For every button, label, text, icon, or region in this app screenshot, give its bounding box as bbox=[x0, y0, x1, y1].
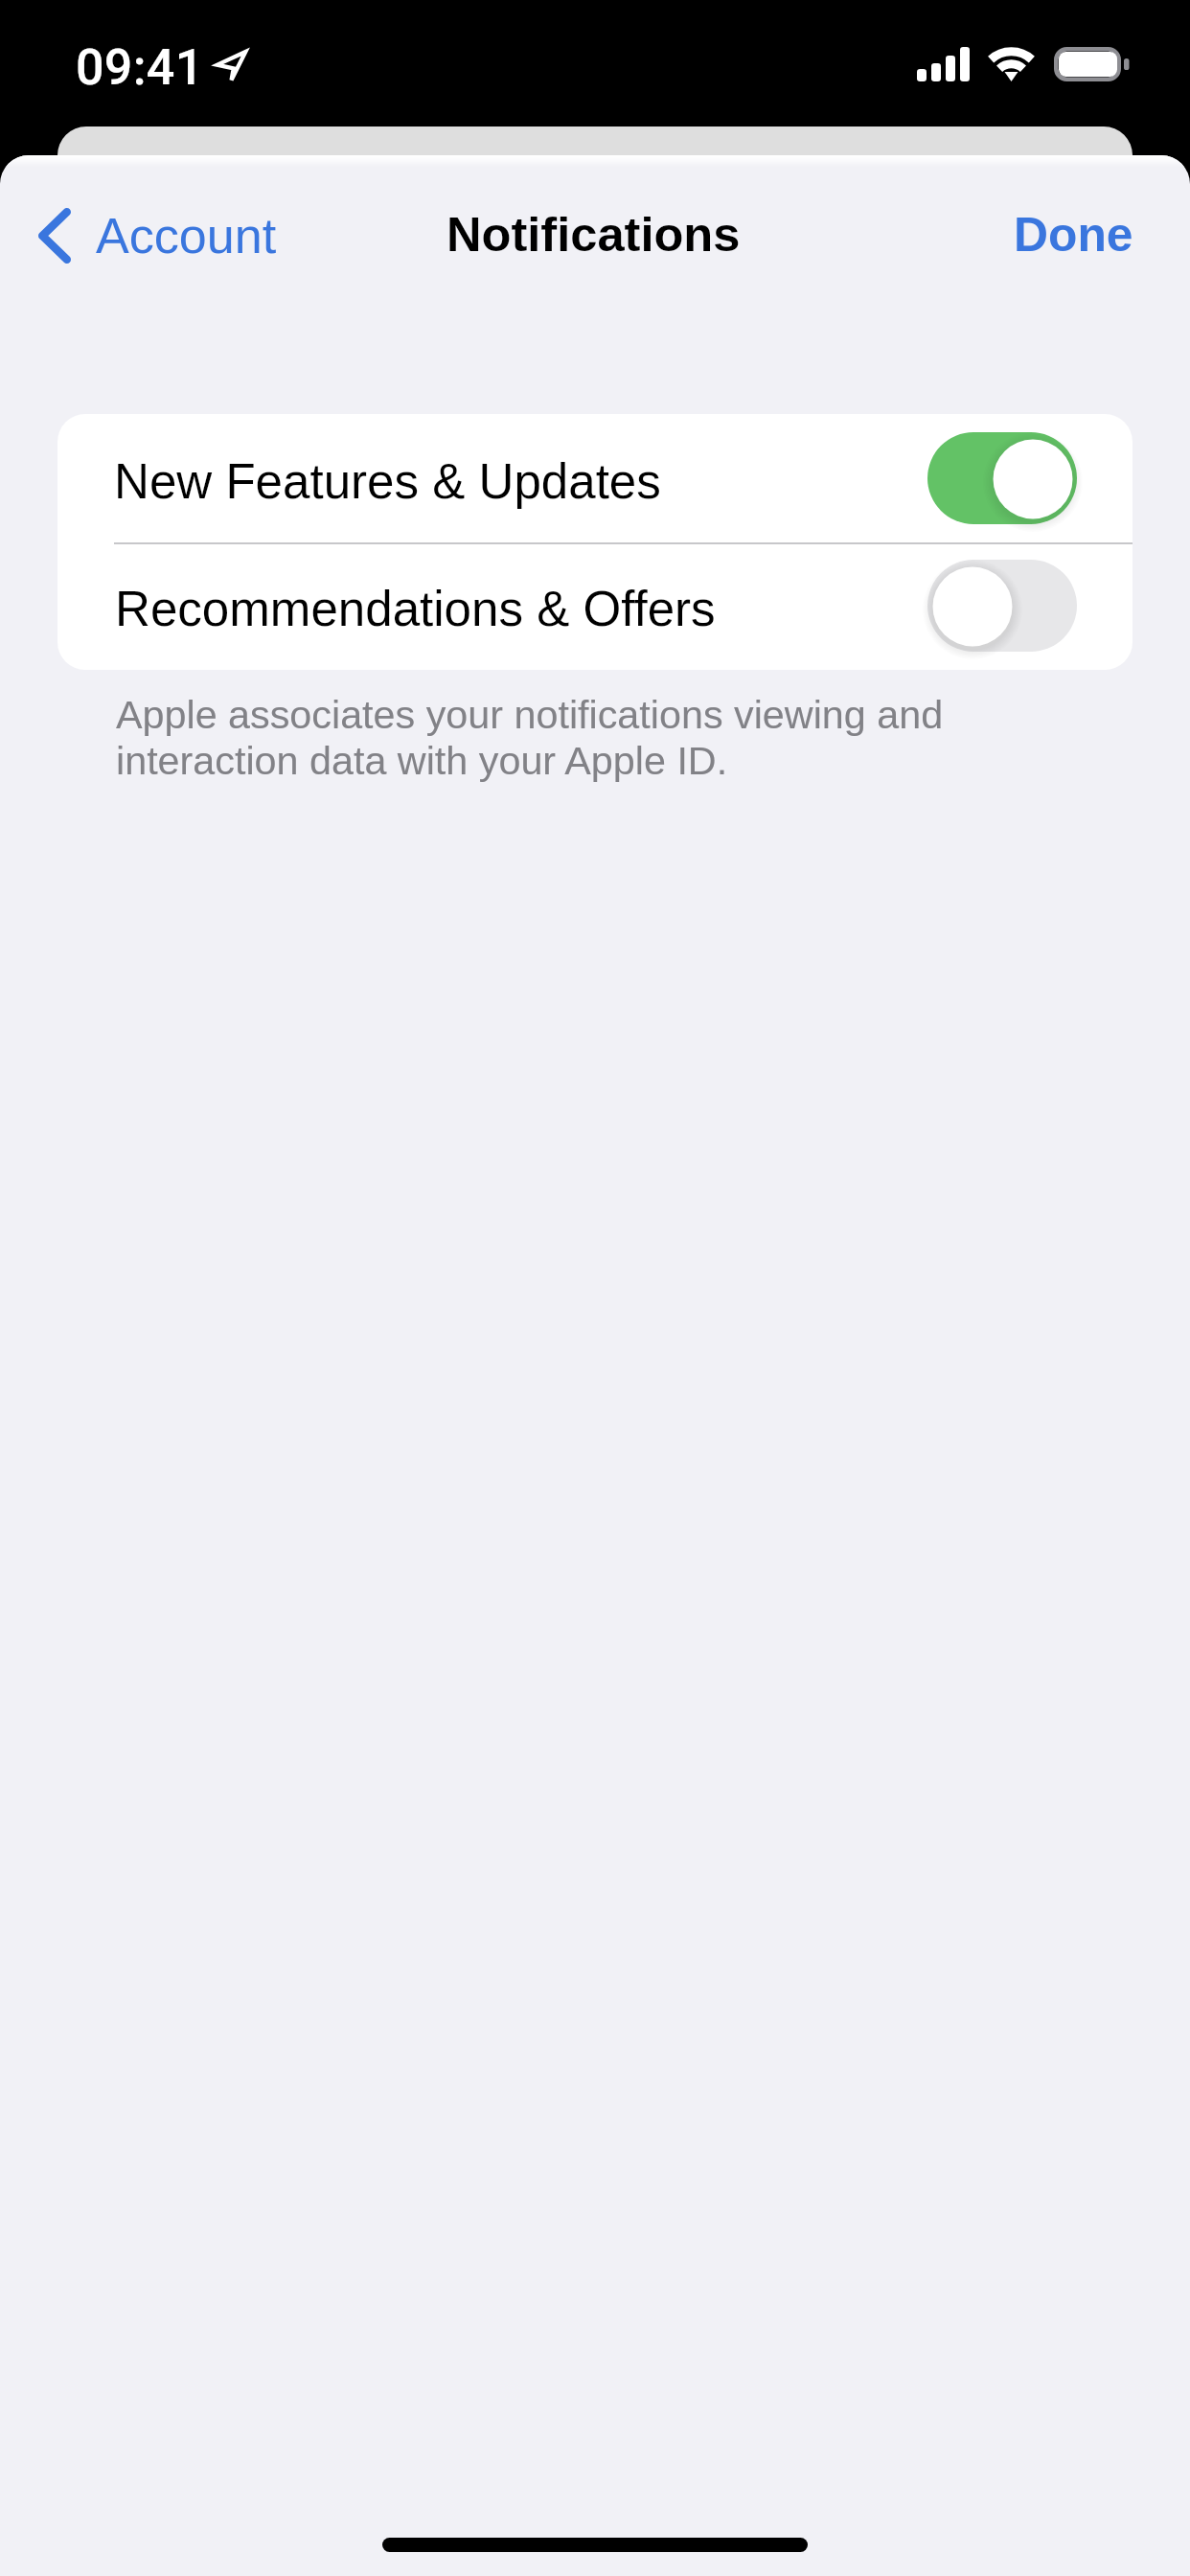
button[interactable]: Off bbox=[927, 560, 1077, 652]
staticText: Recommendations & Offers bbox=[115, 582, 716, 636]
button[interactable]: Account bbox=[17, 182, 305, 289]
staticText: Apple associates your notifications view… bbox=[116, 693, 990, 783]
button[interactable]: Recommendations & Offers bbox=[57, 541, 1133, 669]
other: Location in use bbox=[214, 49, 249, 84]
staticText: New Features & Updates bbox=[114, 454, 661, 509]
other: Cellular signal bbox=[917, 47, 970, 81]
button[interactable]: New Features & Updates bbox=[57, 414, 1133, 541]
button[interactable]: Done bbox=[970, 182, 1175, 289]
staticText: Account bbox=[96, 208, 277, 264]
other: Wi-Fi bbox=[989, 47, 1034, 81]
staticText: Notifications bbox=[446, 207, 741, 262]
staticText: Done bbox=[1014, 208, 1133, 262]
staticText: 09:41 bbox=[76, 38, 204, 97]
button[interactable]: On bbox=[927, 432, 1077, 524]
other: Battery full bbox=[1054, 47, 1130, 81]
